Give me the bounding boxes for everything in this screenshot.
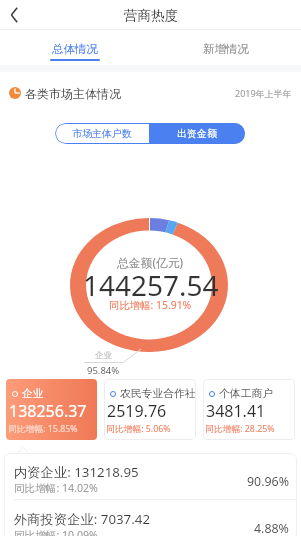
- staticText: 同比增幅: 10.09%: [14, 528, 98, 536]
- staticText: 95.84%: [87, 364, 120, 377]
- staticText: 企业: [95, 350, 112, 361]
- staticText: 市场主体户数: [72, 127, 132, 140]
- staticText: 同比增幅: 15.91%: [109, 298, 192, 312]
- staticText: 同比增幅: 14.02%: [14, 481, 98, 495]
- staticText: 138256.37: [9, 400, 87, 422]
- staticText: 各类市场主体情况: [25, 86, 121, 101]
- button[interactable]: 新增情况: [150, 30, 301, 64]
- staticText: 2519.76: [107, 400, 167, 422]
- button[interactable]: 外商投资企业: 7037.42: [4, 500, 297, 536]
- staticText: 企业: [22, 387, 44, 401]
- staticText: 3481.41: [206, 400, 266, 422]
- staticText: 个体工商户: [219, 387, 273, 401]
- staticText: 90.96%: [247, 473, 289, 490]
- button[interactable]: 企业: [6, 379, 97, 440]
- button[interactable]: 市场主体户数: [55, 123, 149, 144]
- button[interactable]: 出资金额: [149, 123, 245, 144]
- staticText: 农民专业合作社: [120, 387, 196, 401]
- staticText: 内资企业: 131218.95: [14, 463, 139, 481]
- staticText: 同比增幅: 15.85%: [8, 423, 78, 435]
- button[interactable]: 个体工商户: [203, 379, 295, 440]
- staticText: 营商热度: [124, 7, 178, 24]
- staticText: 出资金额: [177, 127, 217, 140]
- staticText: 总金额(亿元): [117, 254, 184, 270]
- button[interactable]: 农民专业合作社: [104, 379, 196, 440]
- button[interactable]: 内资企业: 131218.95: [4, 453, 297, 499]
- button[interactable]: 总体情况: [0, 30, 150, 64]
- staticText: 总体情况: [52, 42, 98, 56]
- staticText: 4.88%: [254, 520, 289, 536]
- button[interactable]: Back: [0, 0, 30, 30]
- staticText: 新增情况: [203, 42, 249, 56]
- staticText: 外商投资企业: 7037.42: [14, 510, 151, 528]
- staticText: 144257.54: [83, 266, 219, 304]
- staticText: 同比增幅: 28.25%: [205, 423, 275, 435]
- staticText: 2019年上半年: [235, 87, 292, 99]
- staticText: 同比增幅: 5.06%: [106, 423, 171, 435]
